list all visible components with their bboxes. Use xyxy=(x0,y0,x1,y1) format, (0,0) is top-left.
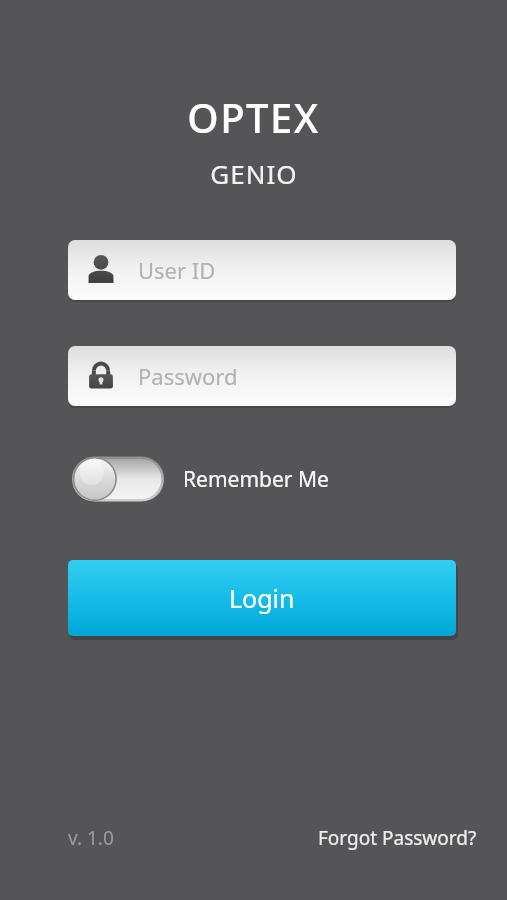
staticText: Remember Me xyxy=(183,465,329,494)
staticText: v. 1.0 xyxy=(68,825,114,851)
button[interactable]: v. 1.0 xyxy=(66,822,116,854)
staticText: Forgot Password? xyxy=(318,825,477,851)
button[interactable]: Remember Me toggle, off xyxy=(72,452,329,506)
button[interactable]: Password field xyxy=(68,346,456,406)
staticText: OPTEX xyxy=(187,90,320,144)
button[interactable]: Login xyxy=(68,560,456,636)
staticText: GENIO xyxy=(210,156,298,191)
staticText: User ID xyxy=(138,255,216,285)
other: Remember Me toggle, off xyxy=(72,455,164,503)
staticText: Password xyxy=(138,361,238,391)
button[interactable]: Forgot Password? xyxy=(316,822,479,854)
button[interactable]: User ID field xyxy=(68,240,456,300)
staticText: Login xyxy=(229,581,295,615)
